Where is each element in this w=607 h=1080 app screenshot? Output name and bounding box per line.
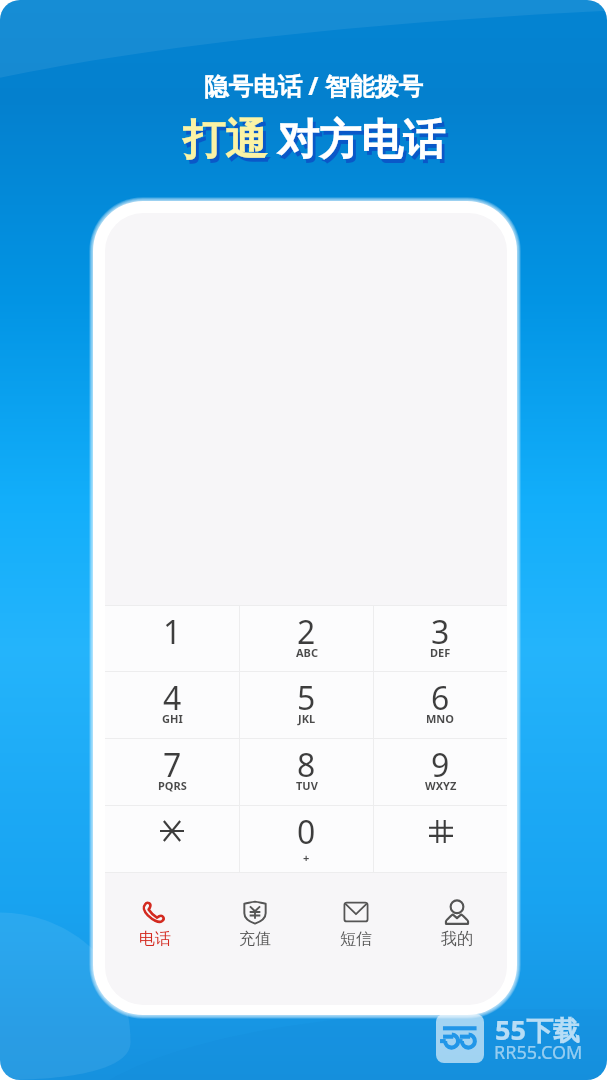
staticText: TUV: [296, 778, 318, 793]
button[interactable]: 8: [240, 739, 373, 805]
staticText: 对方电话: [280, 118, 448, 171]
staticText: 打通: [183, 114, 267, 167]
staticText: 2: [297, 610, 316, 654]
other: Pound: [429, 820, 453, 843]
other: Messages: [343, 899, 369, 925]
staticText: 8: [297, 743, 316, 787]
staticText: 6: [431, 676, 450, 720]
button[interactable]: Recharge: [205, 873, 305, 1005]
button[interactable]: 5: [240, 672, 373, 738]
button[interactable]: 2: [240, 606, 373, 672]
staticText: 我的: [441, 929, 473, 949]
staticText: 1: [163, 610, 182, 654]
staticText: +: [303, 850, 310, 865]
staticText: DEF: [430, 645, 451, 660]
other: Recharge: [242, 899, 268, 925]
button[interactable]: Messages: [305, 873, 406, 1005]
other: Star: [160, 821, 184, 841]
staticText: 5: [297, 676, 316, 720]
button[interactable]: 0: [240, 806, 373, 872]
button[interactable]: Phone: [105, 873, 205, 1005]
staticText: MNO: [426, 711, 455, 726]
other: Profile: [444, 899, 470, 925]
staticText: PQRS: [158, 778, 187, 793]
staticText: 短信: [340, 929, 372, 949]
button[interactable]: Pound: [374, 806, 507, 872]
button[interactable]: 1: [105, 606, 239, 672]
staticText: 0: [297, 810, 316, 854]
button[interactable]: Star: [105, 806, 239, 872]
button[interactable]: 4: [105, 672, 239, 738]
other: Phone: [142, 899, 168, 925]
button[interactable]: 6: [374, 672, 507, 738]
staticText: 充值: [239, 929, 271, 949]
staticText: 隐号电话 / 智能拨号: [204, 69, 423, 102]
button[interactable]: 7: [105, 739, 239, 805]
button[interactable]: 3: [374, 606, 507, 672]
button[interactable]: Profile: [406, 873, 507, 1005]
staticText: 9: [431, 743, 450, 787]
staticText: 55下载: [495, 1011, 580, 1048]
staticText: 3: [431, 610, 450, 654]
staticText: 对方电话: [277, 114, 445, 167]
staticText: JKL: [298, 711, 316, 726]
staticText: 打通: [186, 118, 270, 171]
staticText: RR55.COM: [494, 1040, 583, 1065]
staticText: 4: [163, 676, 182, 720]
staticText: 电话: [139, 929, 171, 949]
button[interactable]: 9: [374, 739, 507, 805]
staticText: ABC: [296, 645, 318, 660]
staticText: WXYZ: [425, 778, 457, 793]
staticText: GHI: [162, 711, 183, 726]
staticText: 7: [163, 743, 182, 787]
